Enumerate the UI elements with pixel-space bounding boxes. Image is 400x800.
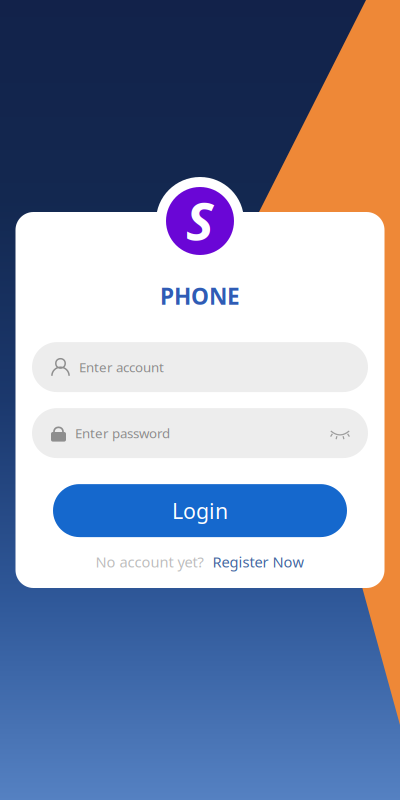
staticText: No account yet? bbox=[95, 552, 203, 572]
staticText: PHONE bbox=[160, 281, 240, 311]
staticText: Login bbox=[172, 496, 228, 525]
button[interactable]: Register Now bbox=[212, 552, 304, 572]
staticText: Enter account bbox=[79, 358, 164, 376]
staticText: Enter password bbox=[75, 424, 170, 442]
staticText: S bbox=[186, 185, 214, 255]
button[interactable]: Login bbox=[53, 484, 347, 537]
staticText: Register Now bbox=[212, 552, 304, 572]
